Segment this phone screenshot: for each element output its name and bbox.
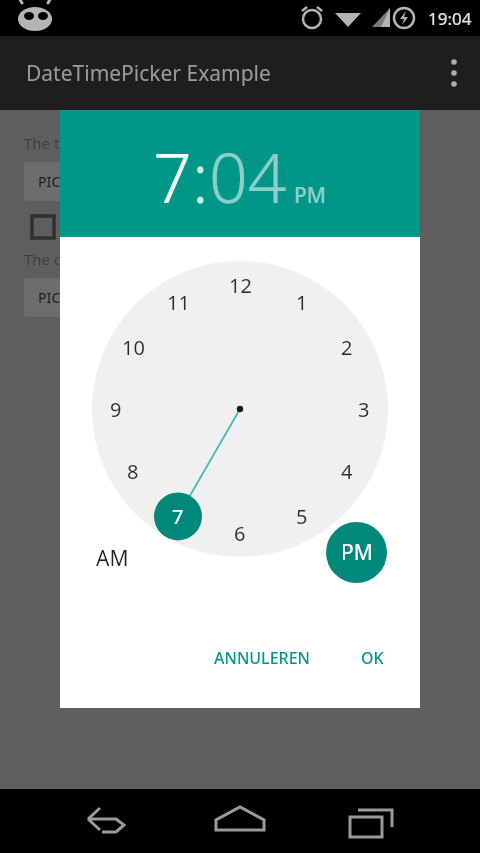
button[interactable]: 12 [220, 271, 260, 299]
button[interactable]: PM [294, 181, 327, 223]
staticText: 6 [234, 520, 246, 547]
button[interactable]: PM [326, 522, 387, 583]
staticText: DateTimePicker Example [26, 59, 271, 88]
button[interactable]: 7 [158, 502, 198, 530]
staticText: 04 [209, 130, 287, 223]
button[interactable]: PICK DATE [24, 278, 121, 317]
staticText: PICK TIME [38, 172, 107, 191]
staticText: 12 [229, 272, 252, 299]
button[interactable]: 6 [220, 519, 260, 547]
button[interactable]: 10 [113, 333, 153, 361]
button[interactable]: Recent apps [344, 793, 400, 849]
button[interactable]: More options [428, 47, 480, 99]
staticText: OK [361, 647, 384, 669]
button[interactable]: PICK TIME [24, 162, 121, 201]
staticText: The time is 19:04 [24, 133, 143, 153]
staticText: 8 [127, 458, 139, 485]
button[interactable]: 7 [153, 130, 192, 223]
button[interactable]: Home [212, 793, 268, 849]
staticText: 9 [110, 396, 122, 423]
button[interactable]: 04 [209, 130, 287, 223]
staticText: 11 [167, 289, 190, 316]
staticText: 2 [341, 334, 353, 361]
staticText: PM [341, 538, 373, 567]
button[interactable]: 1 [282, 288, 322, 316]
staticText: PM [294, 181, 327, 210]
staticText: 3 [358, 396, 370, 423]
button[interactable]: ANNULEREN [202, 635, 323, 681]
button[interactable]: 9 [96, 395, 136, 423]
staticText: AM [96, 544, 129, 573]
button[interactable]: OK [349, 635, 396, 681]
button[interactable]: 2 [327, 333, 367, 361]
staticText: PICK DATE [38, 288, 107, 307]
staticText: 7 [153, 130, 192, 223]
button[interactable]: AM [88, 536, 137, 581]
staticText: : [192, 130, 209, 223]
button[interactable]: 11 [158, 288, 198, 316]
button[interactable]: 3 [344, 395, 384, 423]
staticText: 4 [341, 458, 353, 485]
staticText: ANNULEREN [214, 647, 311, 669]
button[interactable]: 5 [282, 502, 322, 530]
staticText: The date is ... [24, 249, 117, 269]
staticText: 1 [296, 289, 308, 316]
staticText: 7 [172, 503, 184, 530]
staticText: 5 [296, 503, 308, 530]
staticText: 19:04 [428, 7, 472, 30]
staticText: 10 [122, 334, 145, 361]
button[interactable]: Back [80, 793, 136, 849]
button[interactable]: 8 [113, 457, 153, 485]
button[interactable]: 4 [327, 457, 367, 485]
button[interactable]: 24 hour view [30, 214, 56, 240]
